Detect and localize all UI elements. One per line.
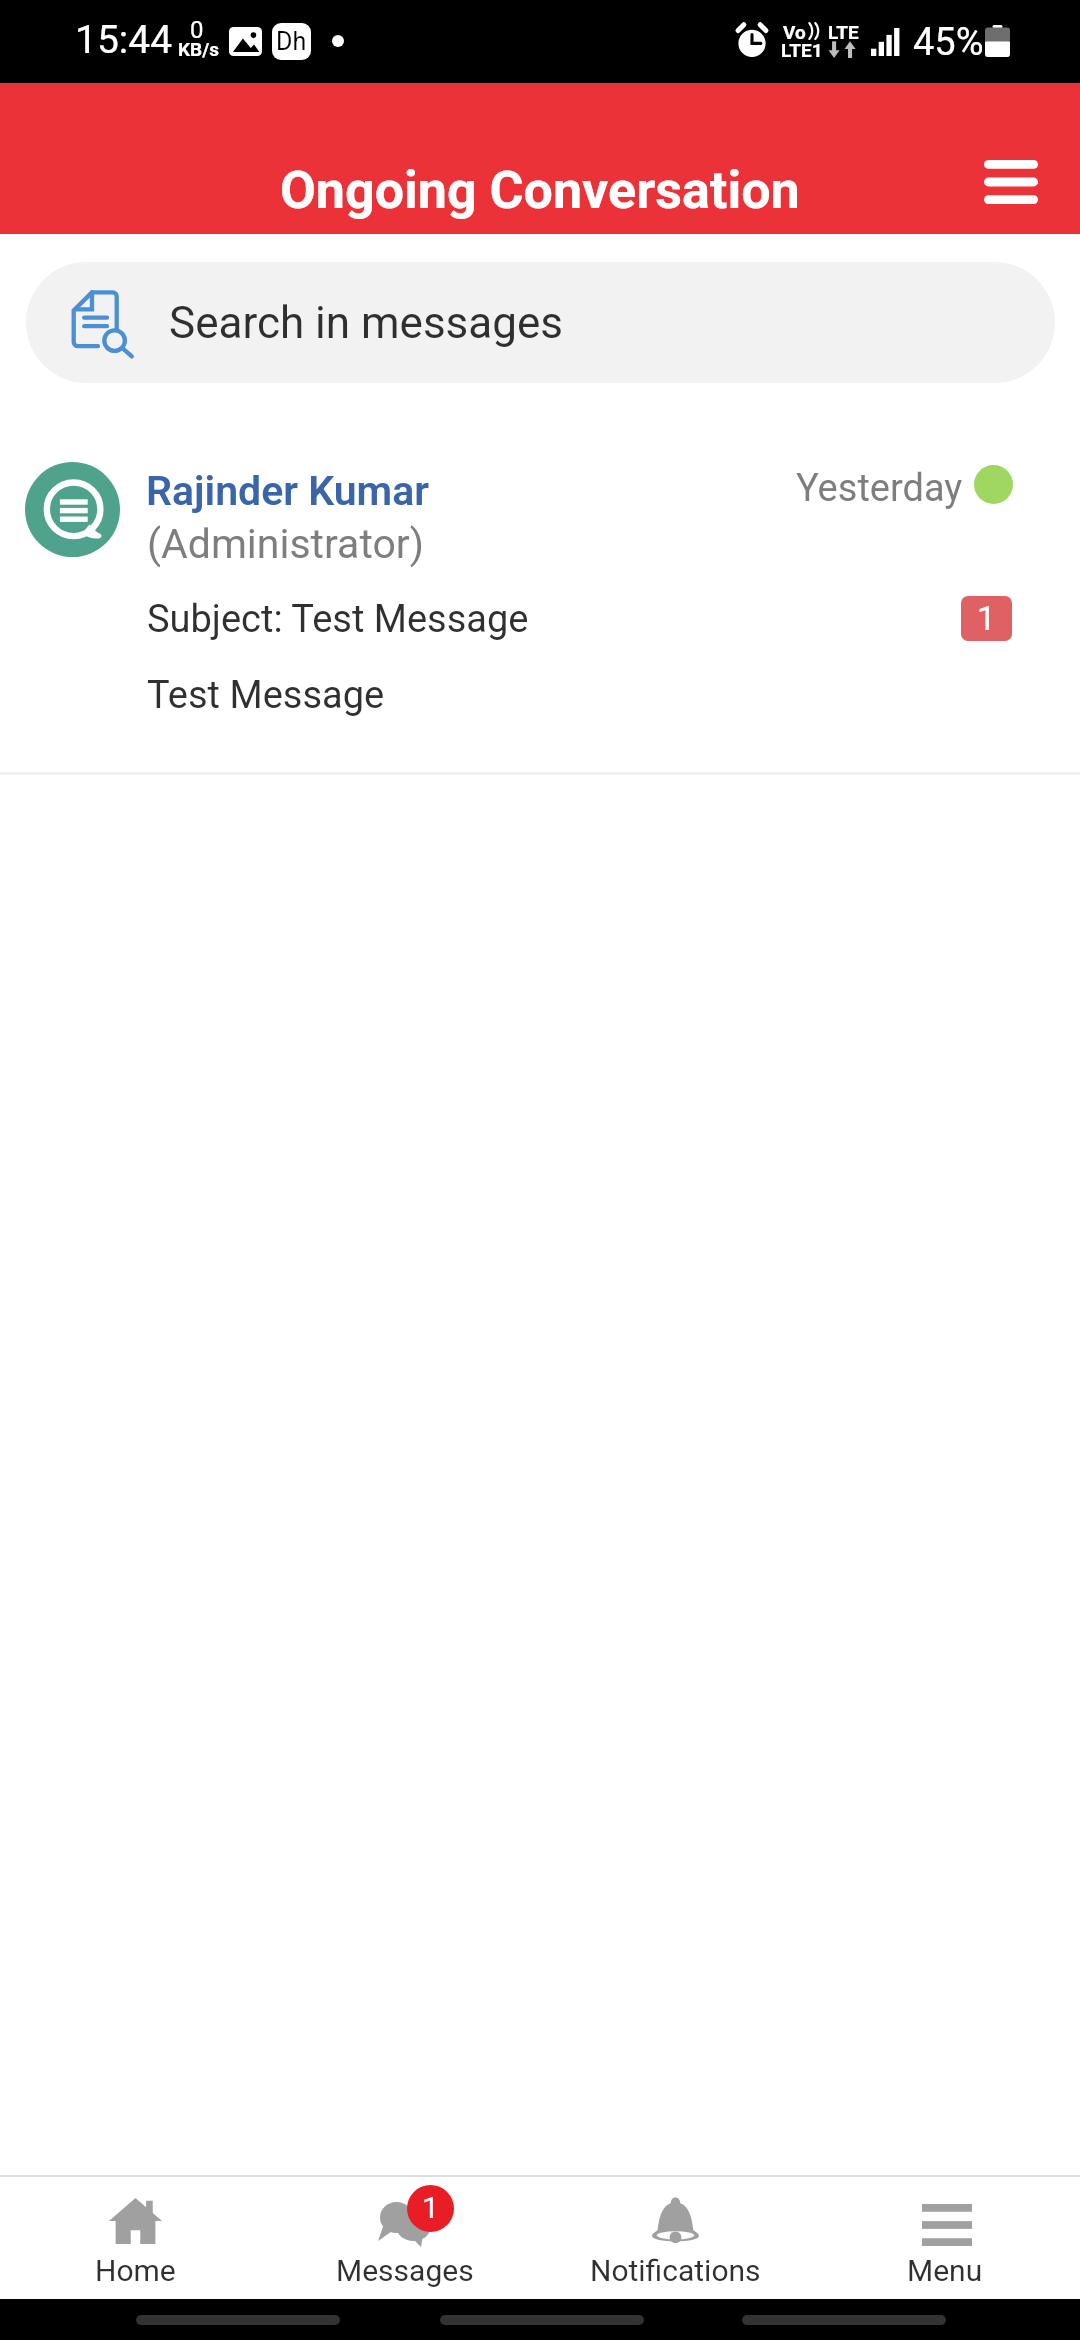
staticText: Subject: Test Message: [147, 597, 529, 642]
staticText: KB/s: [178, 38, 220, 60]
button[interactable]: Open navigation menu: [961, 134, 1061, 230]
button[interactable]: Rajinder Kumar: [0, 400, 1080, 773]
staticText: Dh: [276, 27, 307, 56]
staticText: Test Message: [147, 673, 385, 718]
staticText: Notifications: [590, 2253, 761, 2288]
staticText: LTE: [828, 21, 859, 43]
staticText: LTE1: [781, 39, 823, 61]
staticText: Vo: [783, 21, 806, 43]
staticText: 45%: [913, 20, 984, 65]
staticText: Yesterday: [796, 466, 963, 511]
staticText: Ongoing Conversation: [280, 160, 800, 221]
staticText: 15:44: [75, 17, 173, 63]
button[interactable]: Home: [0, 2177, 270, 2299]
staticText: Menu: [907, 2253, 983, 2288]
button[interactable]: Notifications: [540, 2177, 810, 2299]
staticText: Home: [95, 2253, 176, 2288]
staticText: Rajinder Kumar: [146, 467, 429, 515]
button[interactable]: Search in messages: [26, 262, 1055, 383]
staticText: (Administrator): [147, 520, 424, 568]
staticText: Search in messages: [169, 297, 564, 349]
button[interactable]: 1: [270, 2177, 540, 2299]
staticText: Messages: [336, 2253, 474, 2288]
button[interactable]: Menu: [810, 2177, 1080, 2299]
staticText: 1: [977, 599, 996, 638]
staticText: 0: [190, 16, 204, 44]
staticText: 1: [422, 2190, 439, 2225]
